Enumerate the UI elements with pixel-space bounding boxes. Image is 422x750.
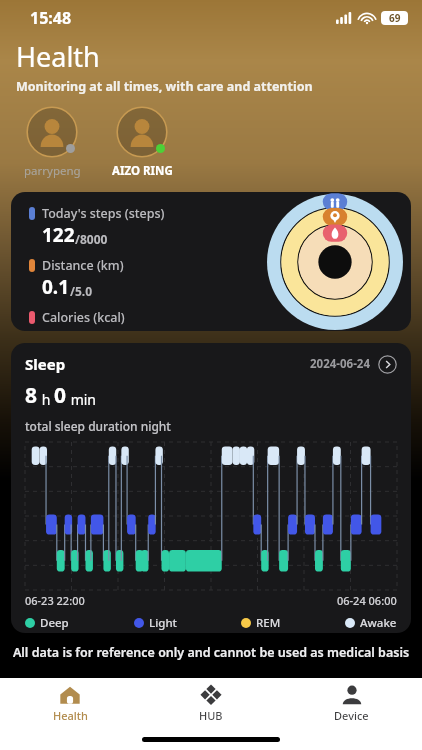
staticText: Health [53,708,88,723]
staticText: 06-24 06:00 [337,593,397,608]
staticText: /8000 [75,231,108,247]
staticText: Device [334,708,369,723]
button[interactable]: Today's steps (steps) [11,192,411,331]
staticText: REM [256,615,281,631]
staticText: 15:48 [30,7,72,29]
button[interactable]: Health [0,684,140,723]
button[interactable]: HUB [140,684,281,723]
staticText: 69 [389,11,401,25]
button[interactable]: AIZO RING [106,106,178,179]
staticText: 06-23 22:00 [25,593,85,608]
staticText: 0 [54,381,67,410]
staticText: min [67,390,96,409]
staticText: HUB [199,708,223,723]
staticText: Monitoring at all times, with care and a… [16,78,313,95]
staticText: Today's steps (steps) [42,205,165,222]
staticText: 0.1 [42,274,70,300]
staticText: total sleep duration night [25,418,171,434]
button[interactable]: Open sleep details [378,355,397,374]
button[interactable]: parrypeng [16,106,88,179]
staticText: All data is for reference only and canno… [8,644,414,661]
staticText: 8 [25,381,38,410]
staticText: Deep [40,615,69,631]
staticText: /5.0 [70,283,93,299]
staticText: Sleep [25,354,66,374]
staticText: Health [16,38,100,75]
staticText: Awake [360,615,397,631]
staticText: 122 [42,222,75,248]
staticText: Calories (kcal) [42,309,125,326]
staticText: Light [149,615,177,631]
staticText: AIZO RING [112,163,173,179]
staticText: parrypeng [24,163,81,179]
staticText: h [38,390,54,409]
staticText: Distance (km) [42,257,124,274]
button[interactable]: Device [281,684,422,723]
staticText: 2024-06-24 [310,356,370,372]
